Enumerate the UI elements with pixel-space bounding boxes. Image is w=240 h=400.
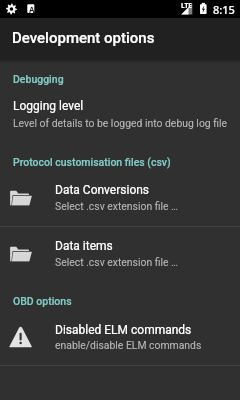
staticText: Logging level: [13, 99, 84, 113]
button[interactable]: Disabled ELM commands: [0, 318, 240, 365]
button[interactable]: Logging level: [0, 93, 240, 133]
staticText: Level of details to be logged into debug…: [13, 117, 228, 129]
staticText: LTE: [181, 1, 192, 10]
staticText: Select .csv extension file …: [55, 200, 179, 212]
staticText: 8:15: [213, 2, 235, 17]
staticText: Disabled ELM commands: [55, 323, 192, 337]
staticText: Select .csv extension file …: [55, 256, 179, 268]
staticText: Data Conversions: [55, 183, 150, 197]
staticText: Protocol customisation files (csv): [13, 156, 171, 168]
other: Settings: [4, 0, 20, 18]
staticText: OBD options: [13, 295, 72, 307]
staticText: Development options: [12, 29, 155, 47]
staticText: Data items: [55, 239, 113, 253]
staticText: Debugging: [13, 73, 64, 85]
staticText: enable/disable ELM commands: [55, 339, 202, 351]
staticText: A: [29, 4, 35, 15]
button[interactable]: Data items: [0, 235, 240, 282]
button[interactable]: Data Conversions: [0, 179, 240, 226]
